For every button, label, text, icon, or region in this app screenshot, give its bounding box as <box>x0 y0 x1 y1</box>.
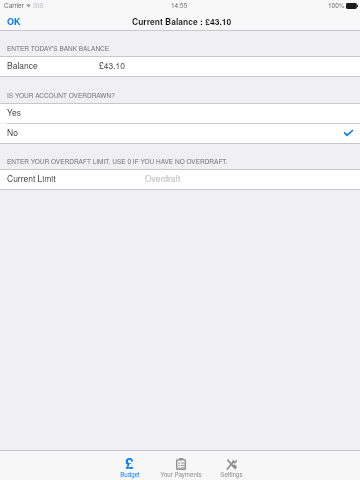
staticText: OK <box>7 15 21 28</box>
button[interactable]: No <box>0 124 360 143</box>
staticText: Overdraft <box>145 172 181 184</box>
button[interactable]: £ <box>104 451 155 480</box>
staticText: Current Limit <box>7 172 56 184</box>
button[interactable]: Yes <box>0 104 360 123</box>
staticText: Budget <box>120 470 140 479</box>
staticText: £43.10 <box>99 59 125 71</box>
staticText: Carrier <box>4 1 24 10</box>
staticText: Settings <box>220 470 243 479</box>
staticText: Your Payments <box>160 470 202 479</box>
button[interactable]: OK <box>7 15 21 28</box>
button[interactable]: Current Limit <box>0 170 360 189</box>
button[interactable]: Settings <box>206 451 257 480</box>
staticText: IS YOUR ACCOUNT OVERDRAWN? <box>7 91 115 100</box>
staticText: ENTER TODAY'S BANK BALANCE <box>7 44 110 53</box>
staticText: No <box>7 126 18 138</box>
button[interactable]: Your Payments <box>155 451 206 480</box>
staticText: 100% <box>328 1 345 10</box>
staticText: Yes <box>7 106 21 118</box>
staticText: Balance <box>7 59 38 71</box>
staticText: Current Balance : £43.10 <box>132 15 232 27</box>
staticText: £ <box>125 452 134 473</box>
button[interactable]: Balance <box>0 57 360 76</box>
staticText: ENTER YOUR OVERDRAFT LIMIT, USE 0 IF YOU… <box>7 157 228 166</box>
staticText: 14:55 <box>171 1 188 10</box>
staticText: SIS <box>33 1 44 10</box>
